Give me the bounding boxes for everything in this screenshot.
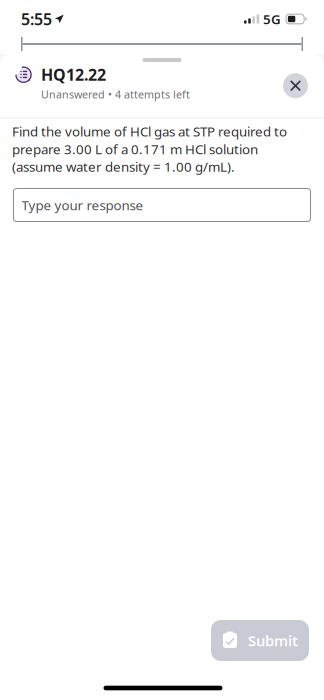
button[interactable]: Close: [281, 71, 310, 100]
staticText: Submit: [248, 631, 298, 650]
button[interactable]: Submit: [211, 620, 309, 661]
staticText: Type your response: [21, 196, 143, 214]
staticText: HQ12.22: [41, 64, 106, 85]
staticText: Find the volume of HCl gas at STP requir…: [12, 122, 287, 175]
staticText: 5:55: [21, 8, 52, 30]
staticText: 5G: [263, 10, 281, 28]
staticText: Unanswered • 4 attempts left: [41, 87, 190, 101]
